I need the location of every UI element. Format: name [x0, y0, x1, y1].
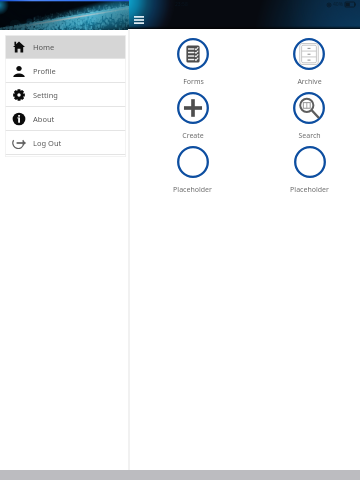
button[interactable]: Log Out [5, 131, 126, 155]
button[interactable]: Search [250, 92, 360, 146]
staticText: About [33, 114, 55, 124]
staticText: Search [298, 131, 321, 141]
button[interactable]: Placeholder [250, 146, 360, 200]
button[interactable]: Open navigation drawer [130, 11, 147, 28]
staticText: Profile [33, 66, 56, 76]
staticText: Forms [183, 77, 204, 87]
button[interactable]: Profile [5, 59, 126, 83]
staticText: Create [182, 131, 204, 141]
staticText: Log Out [33, 138, 62, 148]
staticText: Archive [297, 77, 322, 87]
staticText: 40% [333, 1, 343, 8]
staticText: Home [33, 42, 55, 52]
staticText: Placeholder [173, 185, 212, 195]
button[interactable]: Forms [129, 38, 250, 92]
staticText: Setting [33, 90, 58, 100]
button[interactable]: Archive [250, 38, 360, 92]
button[interactable]: Create [129, 92, 250, 146]
button[interactable]: Placeholder [129, 146, 250, 200]
staticText: Placeholder [290, 185, 329, 195]
button[interactable]: Home [5, 35, 126, 59]
button[interactable]: Setting [5, 83, 126, 107]
button[interactable]: About [5, 107, 126, 131]
